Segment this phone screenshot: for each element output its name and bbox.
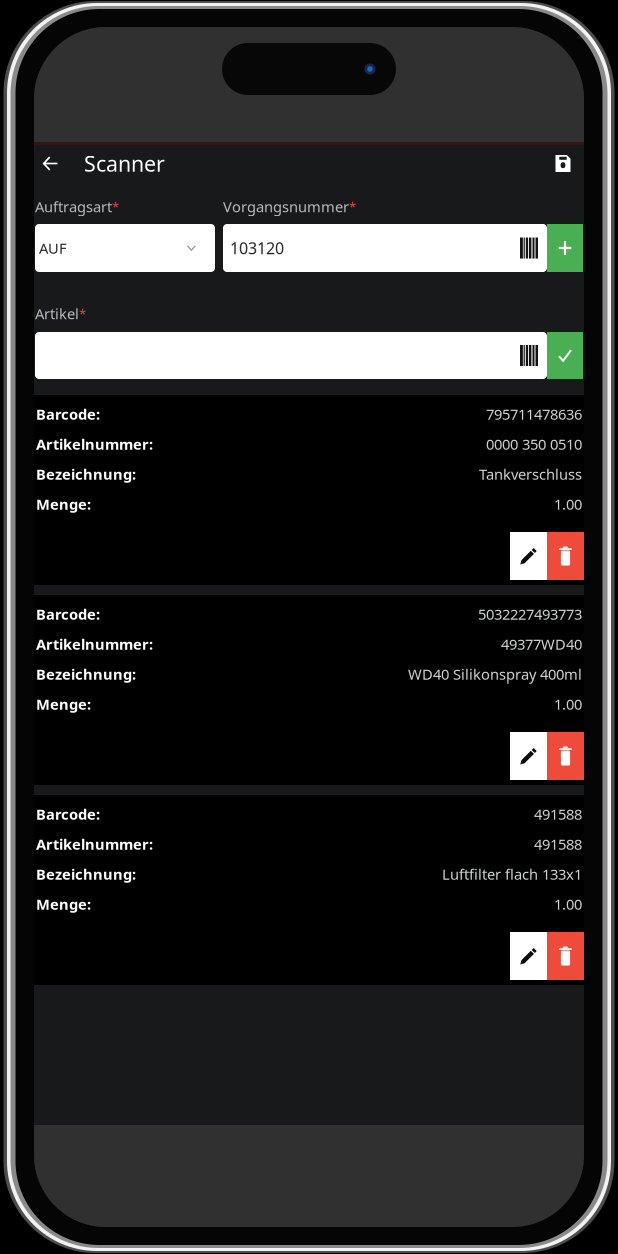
staticText: Bezeichnung:	[36, 664, 136, 684]
staticText: Barcode:	[36, 604, 100, 624]
staticText: Barcode:	[36, 404, 100, 424]
button[interactable]: Bearbeiten	[510, 532, 547, 580]
staticText: *	[112, 198, 119, 215]
button[interactable]: Artikel bestätigen	[547, 332, 583, 379]
button[interactable]: Speichern	[546, 145, 580, 182]
staticText: 1.00	[554, 894, 582, 914]
button[interactable]: Löschen	[547, 532, 584, 580]
button[interactable]: Bearbeiten	[510, 732, 547, 780]
staticText: Artikelnummer:	[36, 634, 153, 654]
staticText: Menge:	[36, 494, 91, 514]
staticText: Artikelnummer:	[36, 834, 153, 854]
button[interactable]: Vorgang hinzufügen	[547, 224, 583, 272]
button[interactable]: Bearbeiten	[510, 932, 547, 980]
staticText: WD40 Silikonspray 400ml	[408, 664, 582, 684]
staticText: *	[79, 305, 86, 322]
staticText: 103120	[230, 237, 284, 259]
staticText: AUF	[39, 238, 67, 258]
staticText: Bezeichnung:	[36, 864, 136, 884]
staticText: 795711478636	[486, 404, 582, 424]
staticText: Menge:	[36, 894, 91, 914]
staticText: Luftfilter flach 133x1	[442, 864, 582, 884]
button[interactable]: Löschen	[547, 732, 584, 780]
staticText: 0000 350 0510	[486, 434, 582, 454]
button[interactable]: Zurück	[34, 145, 67, 182]
staticText: Artikel	[35, 304, 79, 323]
staticText: Barcode:	[36, 804, 100, 824]
staticText: Bezeichnung:	[36, 464, 136, 484]
button[interactable]: Löschen	[547, 932, 584, 980]
staticText: 5032227493773	[478, 604, 582, 624]
staticText: Menge:	[36, 694, 91, 714]
staticText: Vorgangsnummer	[223, 197, 349, 216]
staticText: 1.00	[554, 694, 582, 714]
staticText: 1.00	[554, 494, 582, 514]
staticText: 491588	[534, 834, 582, 854]
staticText: Tankverschluss	[479, 464, 582, 484]
staticText: Scanner	[84, 149, 165, 178]
staticText: *	[349, 198, 356, 215]
staticText: Auftragsart	[35, 197, 112, 216]
staticText: 491588	[534, 804, 582, 824]
staticText: Artikelnummer:	[36, 434, 153, 454]
staticText: 49377WD40	[501, 634, 582, 654]
